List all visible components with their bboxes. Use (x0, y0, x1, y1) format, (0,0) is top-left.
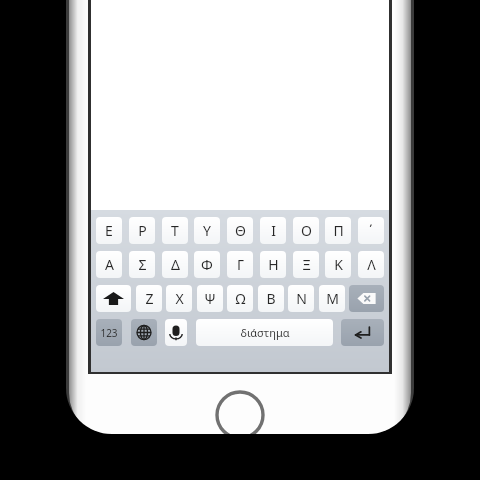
staticText: 123 (100, 326, 118, 340)
button[interactable]: Ζ (136, 285, 162, 312)
button[interactable]: Π (325, 217, 351, 244)
button[interactable]: Ρ (129, 217, 155, 244)
staticText: Ψ (204, 289, 216, 308)
staticText: Τ (171, 221, 179, 240)
staticText: Σ (138, 255, 147, 274)
button[interactable]: Λ (358, 251, 384, 278)
button[interactable]: Υ (194, 217, 220, 244)
button[interactable]: 123 (96, 319, 122, 346)
staticText: Ω (235, 289, 246, 308)
staticText: Μ (326, 289, 339, 308)
button[interactable]: Γ (227, 251, 253, 278)
staticText: Ο (301, 221, 312, 240)
button[interactable]: Ψ (197, 285, 223, 312)
staticText: Ι (271, 221, 276, 240)
button[interactable]: Ι (260, 217, 286, 244)
button[interactable]: Κ (325, 251, 351, 278)
staticText: Υ (203, 221, 211, 240)
staticText: Ξ (302, 255, 311, 274)
staticText: Φ (201, 255, 213, 274)
button[interactable]: Β (258, 285, 284, 312)
staticText: Γ (237, 255, 244, 274)
staticText: Δ (171, 255, 180, 274)
staticText: Β (266, 289, 276, 308)
button[interactable]: Shift (96, 285, 131, 312)
button[interactable]: Α (96, 251, 122, 278)
staticText: Ν (296, 289, 307, 308)
button[interactable]: Change keyboard (131, 319, 157, 346)
button[interactable]: Η (260, 251, 286, 278)
button[interactable]: Ο (293, 217, 319, 244)
staticText: ΄ (369, 221, 373, 240)
staticText: Ε (105, 221, 113, 240)
button[interactable]: Backspace (349, 285, 384, 312)
staticText: Χ (175, 289, 184, 308)
staticText: Ζ (145, 289, 154, 308)
staticText: διάστημα (240, 325, 290, 340)
button[interactable]: Τ (162, 217, 188, 244)
button[interactable]: Θ (227, 217, 253, 244)
staticText: Α (105, 255, 114, 274)
button[interactable]: Φ (194, 251, 220, 278)
button[interactable]: Ν (288, 285, 314, 312)
button[interactable]: Ε (96, 217, 122, 244)
staticText: Λ (367, 255, 376, 274)
button[interactable]: ΄ (358, 217, 384, 244)
button[interactable]: Μ (319, 285, 345, 312)
staticText: Π (333, 221, 344, 240)
button[interactable]: Dictate (165, 319, 187, 346)
button[interactable]: Home (214, 389, 266, 434)
button[interactable]: Σ (129, 251, 155, 278)
button[interactable]: διάστημα (196, 319, 333, 346)
staticText: Θ (235, 221, 246, 240)
staticText: Ρ (138, 221, 147, 240)
button[interactable]: Ω (227, 285, 253, 312)
button[interactable]: Χ (166, 285, 192, 312)
staticText: Η (268, 255, 279, 274)
button[interactable]: Δ (162, 251, 188, 278)
button[interactable]: Ξ (293, 251, 319, 278)
staticText: Κ (334, 255, 343, 274)
button[interactable]: Return (341, 319, 384, 346)
